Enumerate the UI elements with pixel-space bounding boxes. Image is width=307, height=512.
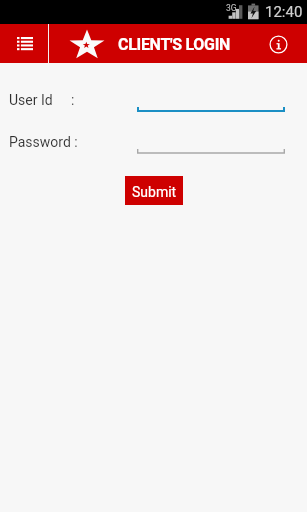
staticText: CLIENT'S LOGIN	[118, 35, 231, 54]
button[interactable]: Submit	[125, 176, 183, 205]
button[interactable]: Info	[262, 25, 295, 64]
button[interactable]	[137, 143, 285, 157]
staticText: 12:40	[265, 3, 303, 21]
staticText: 3G	[226, 3, 237, 13]
button[interactable]: Menu	[0, 24, 48, 63]
button[interactable]	[137, 101, 285, 115]
staticText: User Id	[9, 92, 53, 108]
staticText: :	[71, 92, 75, 108]
staticText: Password :	[9, 134, 78, 150]
staticText: Submit	[132, 184, 177, 200]
